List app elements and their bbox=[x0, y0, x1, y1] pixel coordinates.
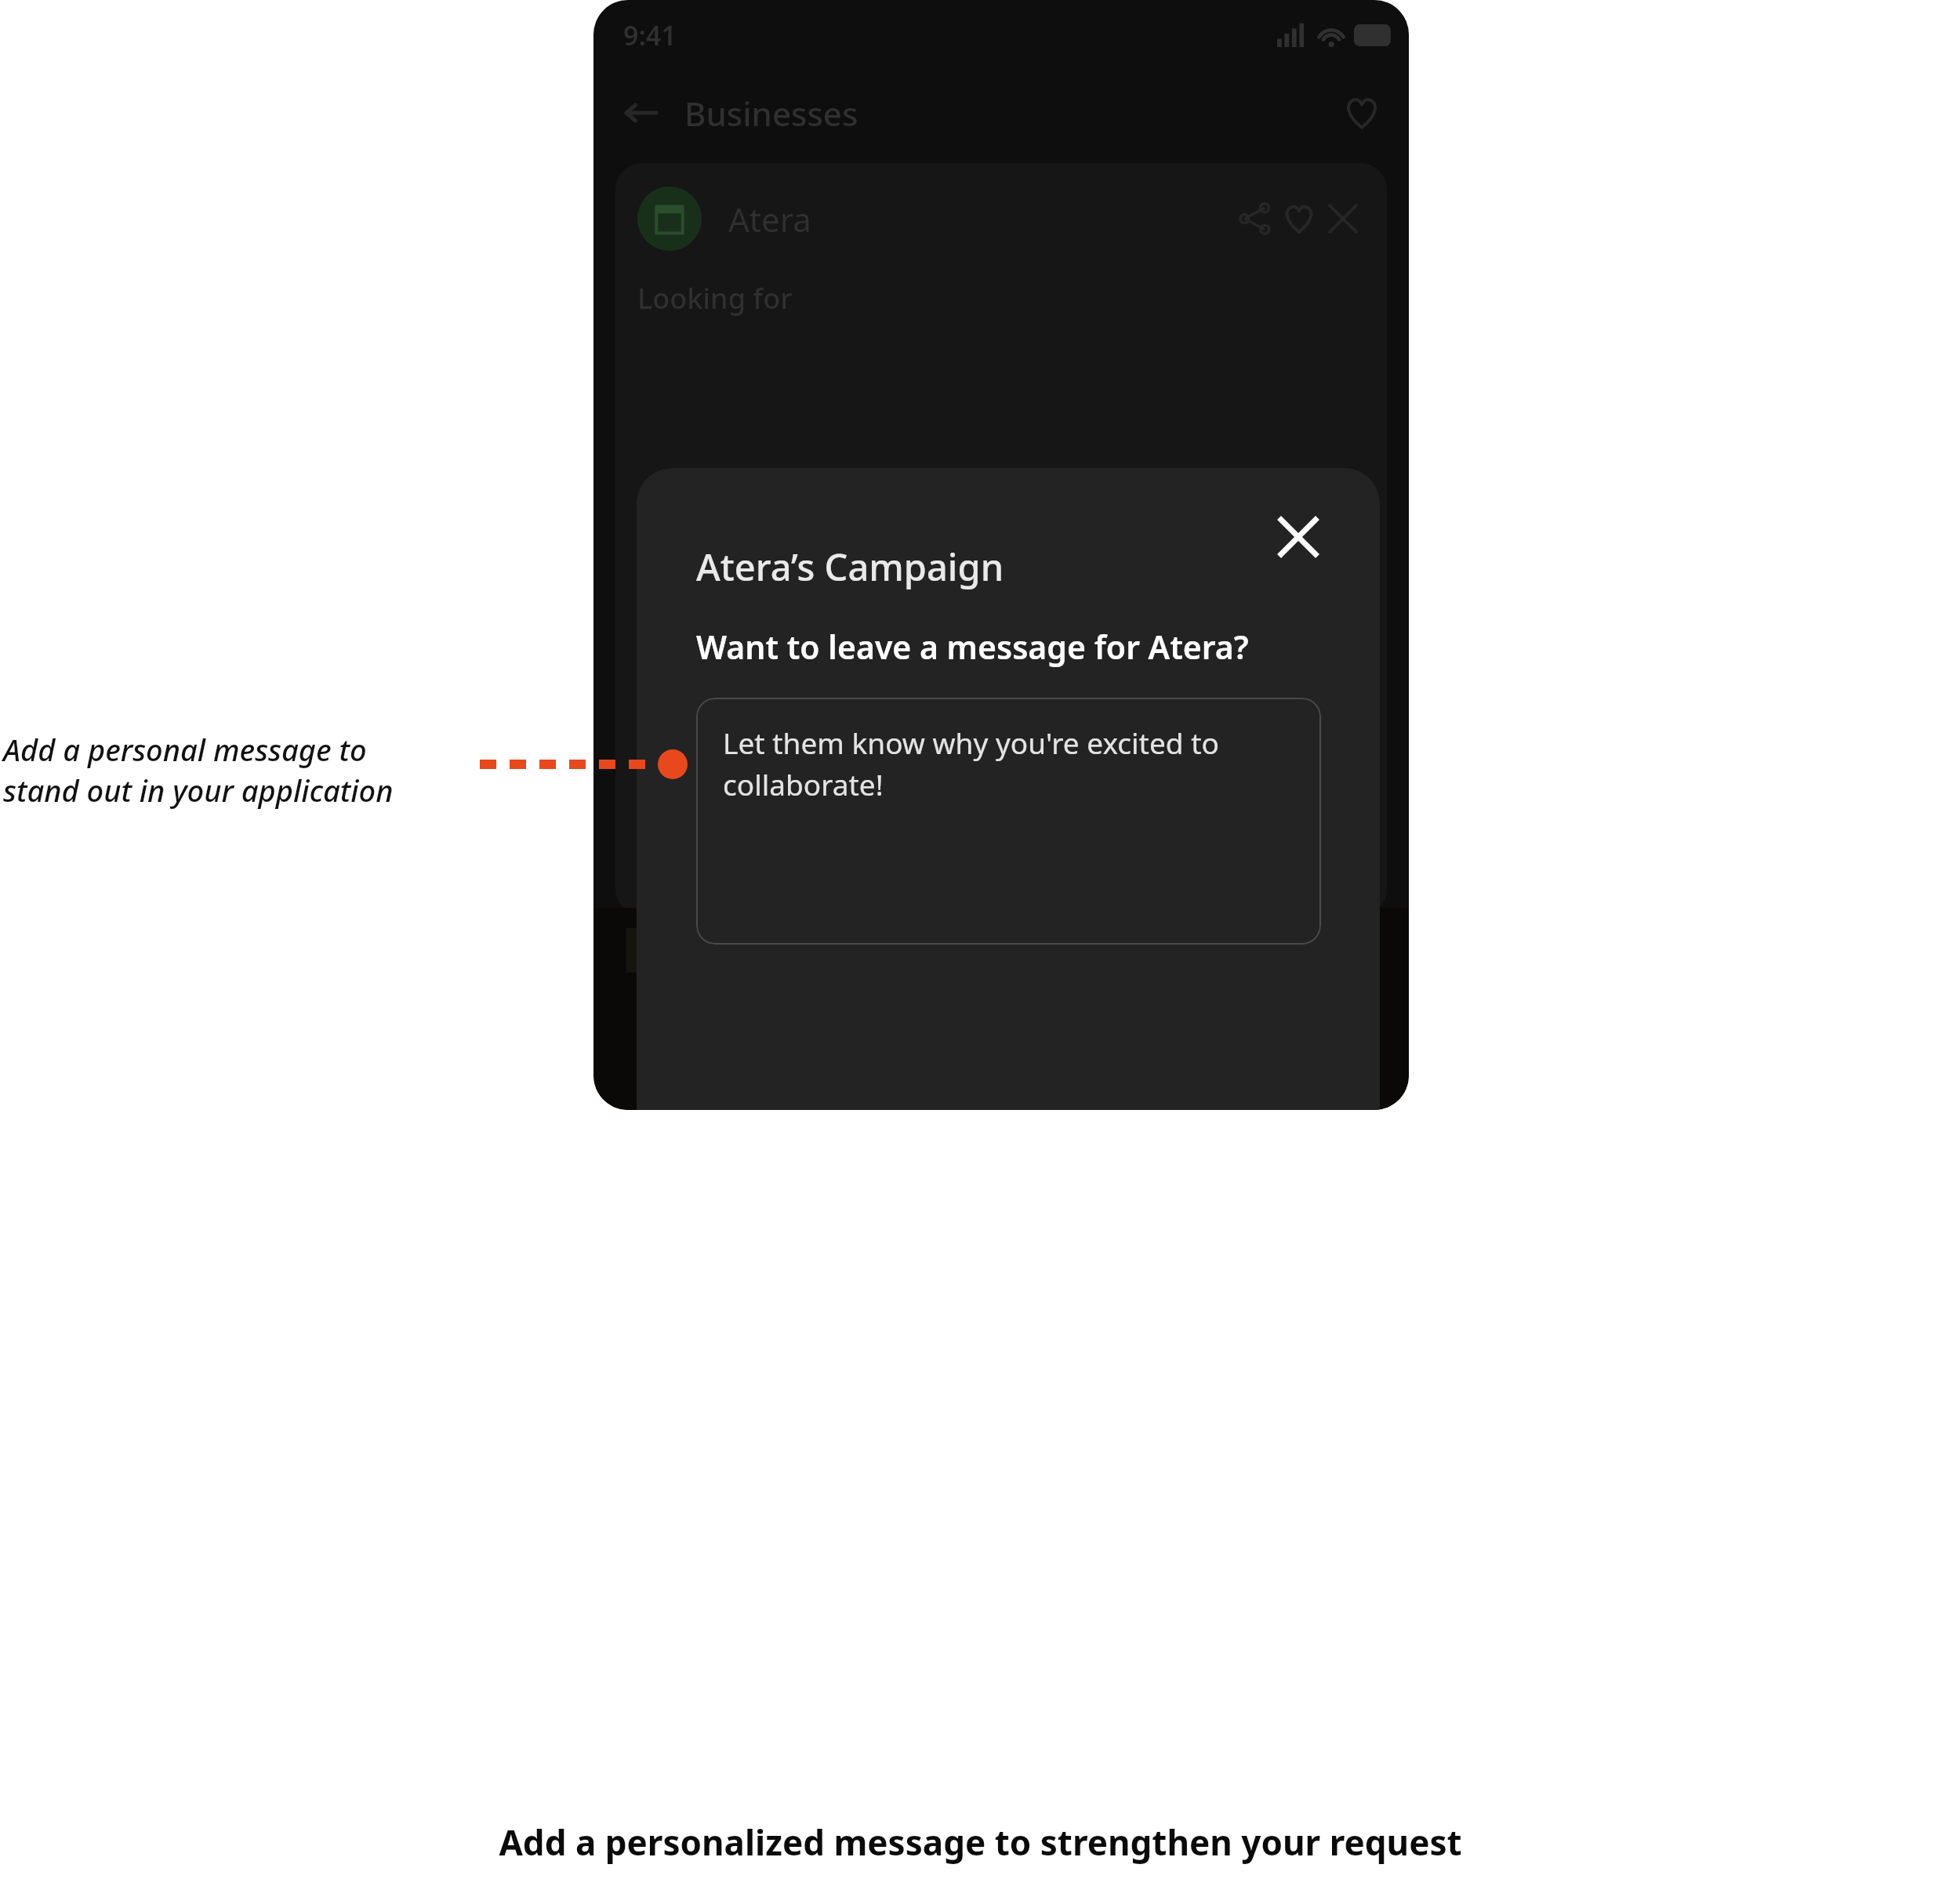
staticText: Atera bbox=[728, 197, 811, 241]
button[interactable]: Share bbox=[1233, 197, 1277, 241]
button[interactable]: Close bbox=[1267, 506, 1330, 568]
button[interactable]: Let them know why you're excited to coll… bbox=[696, 698, 1321, 945]
staticText: Want to leave a message for Atera? bbox=[696, 625, 1249, 669]
staticText: Let them know why you're excited to coll… bbox=[723, 723, 1232, 804]
staticText: Something a long bbox=[637, 869, 876, 907]
staticText: Atera’s Campaign bbox=[696, 542, 1004, 592]
button[interactable]: Dismiss bbox=[1321, 197, 1365, 241]
button[interactable]: Like bbox=[1277, 197, 1321, 241]
staticText: Add a personalized message to strengthen… bbox=[499, 1819, 1462, 1866]
staticText: Businesses bbox=[684, 91, 858, 136]
button[interactable]: Favorites bbox=[1338, 89, 1385, 136]
staticText: Add a personal message to bbox=[3, 729, 367, 770]
staticText: stand out in your application bbox=[3, 770, 394, 811]
button[interactable]: Back bbox=[617, 89, 664, 136]
staticText: Looking for bbox=[637, 279, 793, 317]
staticText: 9:41 bbox=[623, 17, 677, 53]
